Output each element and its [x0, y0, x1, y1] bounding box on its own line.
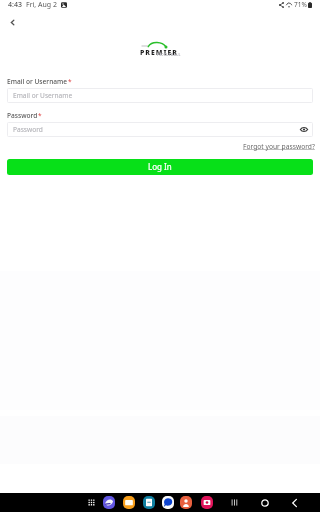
- button[interactable]: Email or Username: [7, 88, 313, 103]
- button[interactable]: Password: [7, 122, 313, 137]
- staticText: Email or Username: [13, 91, 73, 100]
- staticText: Email or Username: [7, 77, 68, 86]
- button[interactable]: Internet: [103, 496, 115, 509]
- staticText: Fri, Aug 2: [26, 0, 57, 10]
- staticText: *: [38, 111, 42, 120]
- staticText: Password: [7, 111, 38, 120]
- staticText: PREMIER: [140, 48, 178, 57]
- button[interactable]: Messages: [162, 496, 174, 509]
- button[interactable]: Forgot your password?: [243, 141, 315, 152]
- button[interactable]: My Files: [123, 496, 135, 509]
- staticText: Password: [13, 125, 43, 134]
- staticText: Forgot your password?: [243, 142, 315, 151]
- button[interactable]: Home: [258, 496, 271, 509]
- button[interactable]: Back: [5, 15, 19, 29]
- button[interactable]: Apps: [85, 496, 98, 509]
- button[interactable]: Calendar: [143, 496, 155, 509]
- staticText: 4:43: [8, 0, 22, 10]
- button[interactable]: Back: [288, 496, 301, 509]
- staticText: Log In: [148, 161, 172, 172]
- staticText: PICKLEBALL: [157, 52, 181, 56]
- button[interactable]: Log In: [7, 159, 313, 175]
- button[interactable]: Camera: [201, 496, 213, 509]
- button[interactable]: Show password: [299, 125, 308, 134]
- button[interactable]: Contacts: [180, 496, 192, 509]
- staticText: 71%: [294, 0, 307, 9]
- button[interactable]: Recent apps: [228, 496, 241, 509]
- staticText: *: [68, 77, 72, 86]
